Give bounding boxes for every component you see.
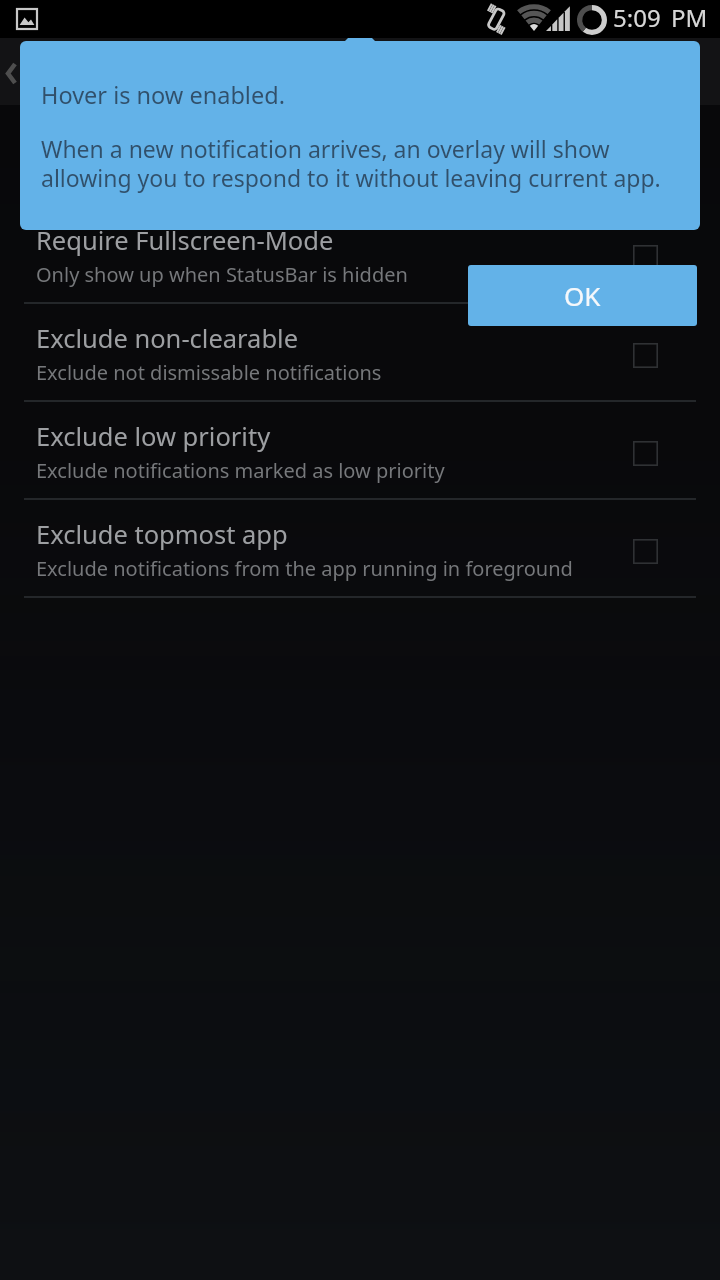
staticText: Exclude non-clearable: [36, 321, 299, 356]
button[interactable]: Require Fullscreen-Mode: [0, 206, 720, 304]
staticText: Exclude low priority: [36, 419, 271, 454]
button[interactable]: Back: [0, 38, 40, 105]
staticText: When a new notification arrives, an over…: [41, 133, 679, 194]
staticText: OK: [564, 278, 601, 313]
staticText: 5:09: [613, 1, 661, 34]
button[interactable]: OK: [468, 265, 697, 326]
staticText: Require Fullscreen-Mode: [36, 223, 334, 258]
staticText: Only show up when StatusBar is hidden: [36, 261, 408, 288]
button[interactable]: Exclude topmost app: [0, 500, 720, 598]
staticText: Exclude notifications marked as low prio…: [36, 457, 445, 484]
staticText: Exclude notifications from the app runni…: [36, 555, 573, 582]
staticText: Exclude not dismissable notifications: [36, 359, 382, 386]
staticText: PM: [671, 1, 708, 34]
button[interactable]: Exclude low priority: [0, 402, 720, 500]
button[interactable]: Exclude non-clearable: [0, 304, 720, 402]
staticText: Exclude topmost app: [36, 517, 288, 552]
staticText: Hover is now enabled.: [41, 79, 285, 111]
